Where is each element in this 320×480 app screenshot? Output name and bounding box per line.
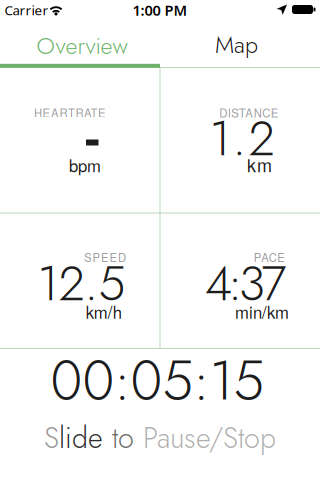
staticText: SPEED (84, 249, 126, 265)
staticText: km/h (86, 300, 122, 323)
staticText: km (247, 152, 272, 177)
staticText: Map (215, 28, 258, 62)
staticText: 4:37 (205, 249, 286, 318)
staticText: Pause/Stop (143, 417, 276, 459)
staticText: Carrier (4, 1, 48, 19)
staticText: Overview (36, 29, 127, 63)
button[interactable]: Map (156, 23, 316, 67)
staticText: 12.5 (37, 249, 125, 318)
staticText: S (44, 417, 59, 459)
button[interactable]: S (44, 417, 276, 459)
staticText: PACE (254, 249, 285, 265)
staticText: lide (59, 417, 103, 459)
staticText: HEARTRATE (34, 104, 106, 121)
staticText: to (103, 417, 143, 459)
button[interactable]: Overview (2, 24, 162, 68)
staticText: min/km (235, 300, 289, 323)
staticText: 1:00 PM (132, 0, 187, 20)
staticText: DISTANCE (219, 104, 279, 121)
staticText: bpm (69, 153, 101, 177)
staticText: 00:05:15 (50, 341, 264, 420)
staticText: 1.2 (209, 104, 274, 173)
